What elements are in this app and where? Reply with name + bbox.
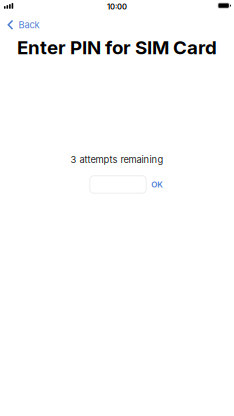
staticText: 10:00 [107, 2, 127, 11]
staticText: Enter PIN for SIM Card [17, 36, 217, 59]
staticText: 3 attempts remaining [70, 154, 163, 165]
staticText: Back [19, 19, 40, 30]
button[interactable]: OK [146, 176, 168, 193]
staticText: OK [151, 180, 163, 189]
button[interactable]: Back [0, 14, 46, 35]
